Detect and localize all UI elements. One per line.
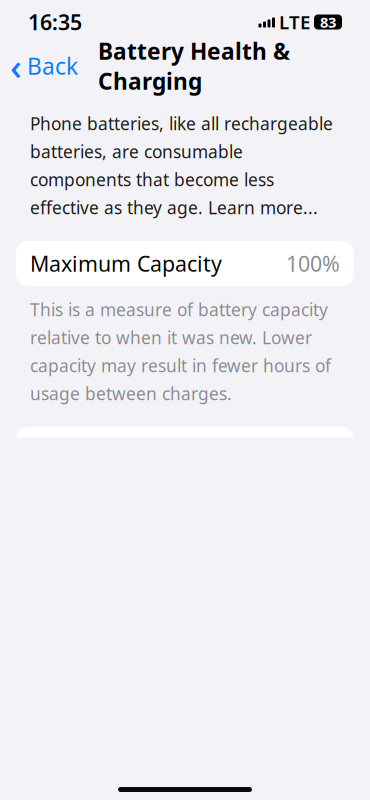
staticText: To reduce battery aging, iPhone learns f… [30, 704, 326, 800]
staticText: 83 [320, 12, 336, 32]
button[interactable]: ‹ [0, 44, 86, 88]
staticText: 16:35 [28, 8, 82, 36]
staticText: Battery Health & Charging [98, 36, 290, 96]
staticText: LTE [279, 10, 310, 34]
staticText: This is a measure of battery capacity re… [30, 298, 331, 405]
staticText: ‹ [10, 42, 22, 90]
staticText: Back [27, 51, 78, 81]
staticText: Maximum Capacity [30, 249, 222, 278]
staticText: Phone batteries, like all rechargeable b… [30, 112, 333, 219]
staticText: 100% [286, 249, 340, 278]
button[interactable]: Peak Performance Capability [0, 427, 370, 472]
